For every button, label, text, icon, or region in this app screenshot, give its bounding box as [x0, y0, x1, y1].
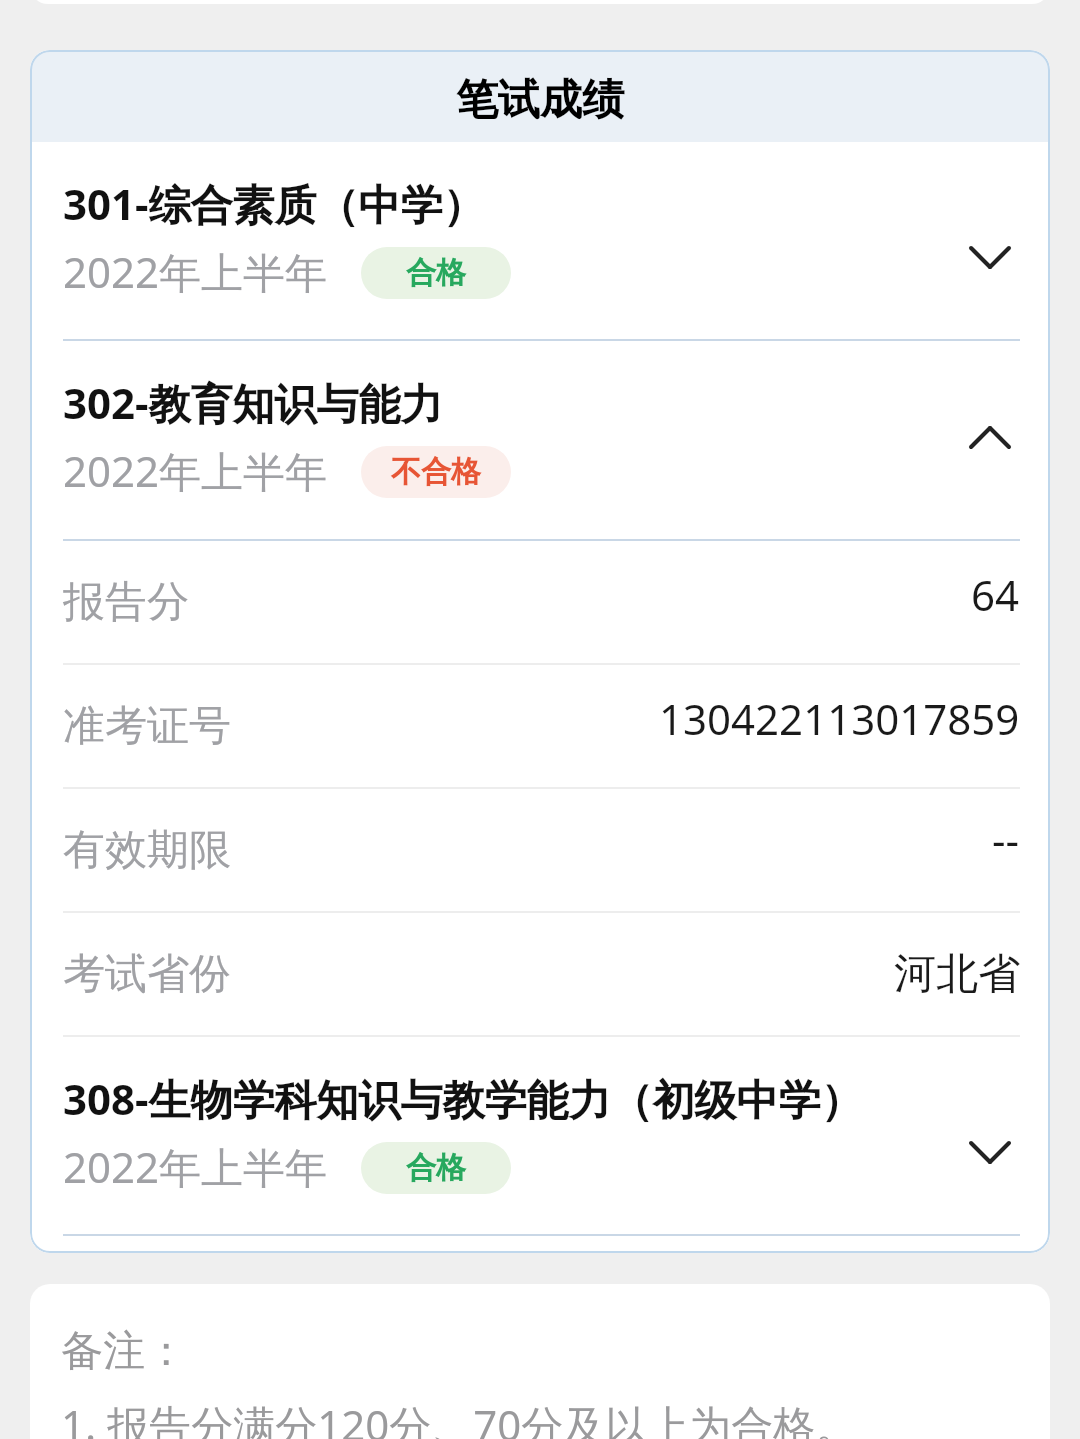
staticText: 准考证号	[63, 700, 231, 753]
staticText: 合格	[406, 1149, 466, 1187]
staticText: 备注：	[61, 1325, 187, 1378]
staticText: 河北省	[894, 948, 1020, 1001]
staticText: 考试省份	[63, 948, 231, 1001]
staticText: 2022年上半年	[63, 1138, 328, 1195]
staticText: 有效期限	[63, 824, 231, 877]
staticText: 2022年上半年	[63, 243, 328, 300]
staticText: 笔试成绩	[456, 74, 624, 127]
staticText: --	[992, 811, 1020, 868]
other: Collapse	[969, 426, 1012, 451]
staticText: 308-生物学科知识与教学能力（初级中学）	[63, 1070, 863, 1127]
button[interactable]: 301-综合素质（中学）	[30, 142, 1050, 339]
staticText: 301-综合素质（中学）	[63, 175, 485, 232]
button[interactable]: 308-生物学科知识与教学能力（初级中学）	[30, 1037, 1050, 1234]
staticText: 2022年上半年	[63, 442, 328, 499]
staticText: 1. 报告分满分120分、70分及以上为合格。	[61, 1396, 858, 1439]
button[interactable]: 302-教育知识与能力	[30, 341, 1050, 539]
staticText: 合格	[406, 254, 466, 292]
staticText: 302-教育知识与能力	[63, 374, 443, 431]
staticText: 报告分	[63, 576, 189, 629]
other: Expand	[969, 1141, 1012, 1166]
staticText: 64	[971, 566, 1020, 623]
staticText: 130422113017859	[659, 690, 1020, 747]
other: Expand	[969, 246, 1012, 271]
staticText: 不合格	[391, 453, 481, 491]
